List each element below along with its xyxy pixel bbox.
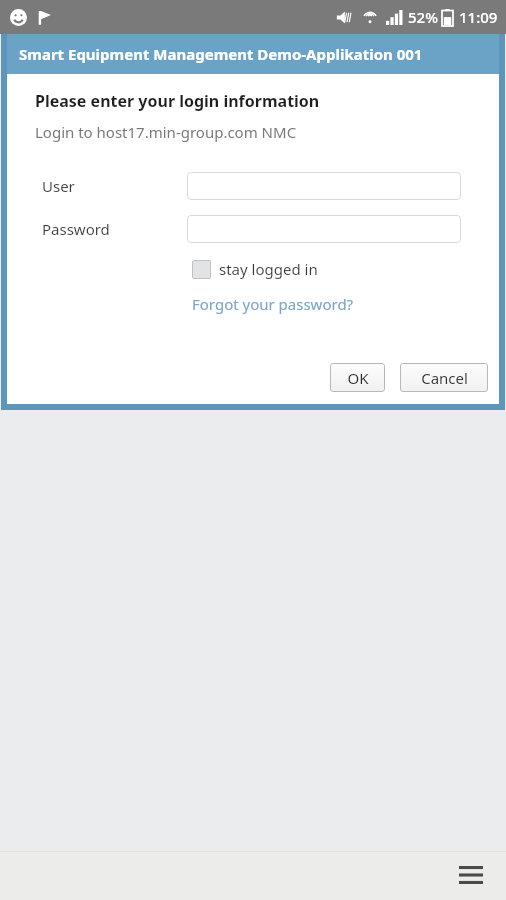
staticText: Login to host17.min-group.com NMC — [35, 122, 297, 142]
button[interactable]: OK — [330, 363, 385, 392]
staticText: Cancel — [421, 368, 468, 388]
staticText: Forgot your password? — [192, 294, 354, 314]
staticText: User — [42, 176, 75, 196]
staticText: stay logged in — [219, 259, 318, 279]
staticText: 52% — [408, 7, 438, 27]
button[interactable]: Menu — [454, 858, 488, 892]
staticText: Please enter your login information — [35, 90, 320, 112]
button[interactable]: stay logged in — [192, 259, 318, 279]
button[interactable] — [187, 172, 461, 200]
staticText: 11:09 — [459, 7, 498, 27]
staticText: OK — [347, 368, 369, 388]
staticText: Smart Equipment Management Demo-Applikat… — [19, 44, 423, 64]
button[interactable]: Forgot your password? — [192, 294, 354, 314]
button[interactable] — [187, 215, 461, 243]
button[interactable]: Cancel — [400, 363, 488, 392]
staticText: Password — [42, 219, 110, 239]
